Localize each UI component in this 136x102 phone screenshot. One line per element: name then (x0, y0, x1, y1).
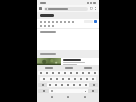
button[interactable]: Back (50, 95, 54, 99)
button[interactable] (86, 71, 92, 75)
button[interactable]: Format option (59, 20, 62, 23)
button[interactable] (40, 77, 47, 81)
button[interactable]: Format option (63, 20, 66, 23)
button[interactable]: Format option (39, 24, 42, 27)
button[interactable]: Shift (38, 83, 47, 87)
button[interactable] (82, 89, 88, 93)
button[interactable] (59, 65, 78, 70)
button[interactable] (68, 71, 74, 75)
button[interactable] (78, 65, 97, 70)
button[interactable]: More options (94, 7, 97, 10)
button[interactable]: Symbols (38, 89, 49, 93)
button[interactable] (78, 77, 84, 81)
button[interactable]: Format option (71, 20, 74, 23)
button[interactable] (44, 7, 88, 11)
button[interactable] (38, 71, 44, 75)
button[interactable] (77, 83, 83, 87)
button[interactable] (44, 71, 50, 75)
button[interactable] (60, 77, 66, 81)
button[interactable]: Recents (83, 95, 87, 99)
button[interactable]: Format option (47, 24, 50, 27)
button[interactable]: Enter (88, 89, 98, 93)
button[interactable]: Backspace (89, 83, 98, 87)
button[interactable] (62, 71, 68, 75)
button[interactable] (84, 77, 90, 81)
button[interactable] (90, 77, 96, 81)
button[interactable] (50, 71, 56, 75)
button[interactable]: Send (94, 20, 97, 23)
button[interactable] (80, 71, 86, 75)
button[interactable] (72, 77, 78, 81)
button[interactable] (59, 83, 65, 87)
button[interactable] (37, 58, 99, 65)
button[interactable]: Share (90, 7, 93, 10)
button[interactable]: Format option (55, 20, 58, 23)
button[interactable]: Emoji (49, 89, 55, 93)
button[interactable]: Tabs (39, 7, 42, 10)
button[interactable] (53, 83, 59, 87)
button[interactable]: Format option (51, 20, 54, 23)
button[interactable] (39, 65, 59, 70)
button[interactable] (54, 77, 60, 81)
button[interactable] (65, 83, 71, 87)
button[interactable]: Format option (43, 24, 46, 27)
button[interactable] (47, 83, 53, 87)
button[interactable]: Format option (47, 20, 50, 23)
button[interactable] (92, 71, 98, 75)
button[interactable] (83, 83, 89, 87)
button[interactable] (47, 77, 54, 81)
button[interactable] (74, 71, 80, 75)
button[interactable] (71, 83, 77, 87)
button[interactable]: Format option (67, 20, 70, 23)
button[interactable]: Format option (51, 24, 54, 27)
button[interactable]: Home (66, 95, 70, 99)
button[interactable]: Format option (39, 20, 42, 23)
button[interactable]: Format option (43, 20, 46, 23)
button[interactable] (56, 71, 62, 75)
button[interactable] (66, 77, 72, 81)
